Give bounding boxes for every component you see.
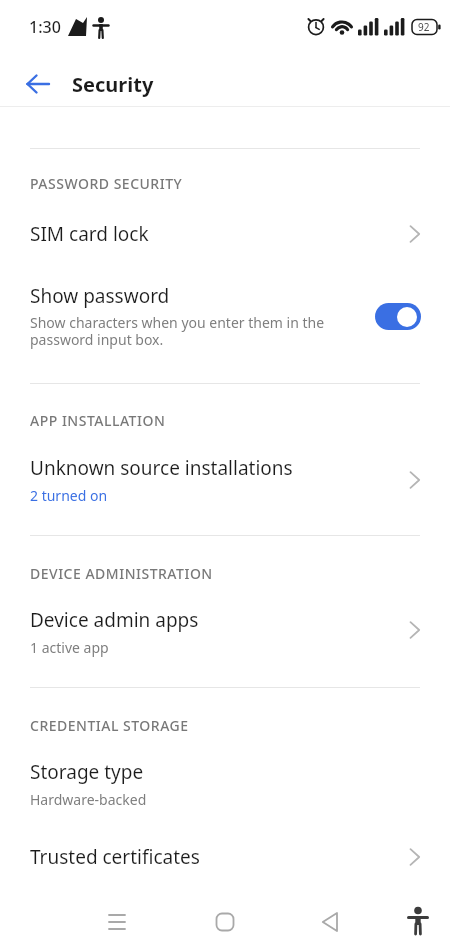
button[interactable]: [0, 828, 450, 886]
button[interactable]: [394, 897, 442, 945]
button[interactable]: [0, 749, 450, 819]
staticText: Security: [72, 71, 154, 98]
staticText: 1 active app: [30, 638, 109, 657]
staticText: CREDENTIAL STORAGE: [30, 716, 189, 735]
staticText: 1:30: [29, 16, 61, 38]
staticText: APP INSTALLATION: [30, 411, 166, 430]
staticText: Trusted certificates: [30, 844, 200, 870]
staticText: DEVICE ADMINISTRATION: [30, 564, 213, 583]
staticText: Device admin apps: [30, 607, 199, 633]
button[interactable]: [375, 303, 421, 330]
staticText: Unknown source installations: [30, 455, 293, 481]
staticText: Hardware-backed: [30, 790, 147, 809]
button[interactable]: [0, 205, 450, 263]
button[interactable]: [92, 897, 142, 947]
staticText: password input box.: [30, 330, 164, 349]
staticText: 2 turned on: [30, 486, 108, 505]
staticText: PASSWORD SECURITY: [30, 174, 183, 193]
button[interactable]: [200, 897, 250, 947]
staticText: Show characters when you enter them in t…: [30, 313, 325, 332]
button[interactable]: [306, 897, 356, 947]
button[interactable]: [20, 66, 56, 102]
button[interactable]: [0, 597, 450, 667]
staticText: Show password: [30, 283, 170, 309]
staticText: 92: [418, 20, 430, 34]
staticText: SIM card lock: [30, 221, 149, 247]
staticText: Storage type: [30, 759, 144, 785]
button[interactable]: [0, 276, 450, 360]
button[interactable]: [0, 445, 450, 515]
